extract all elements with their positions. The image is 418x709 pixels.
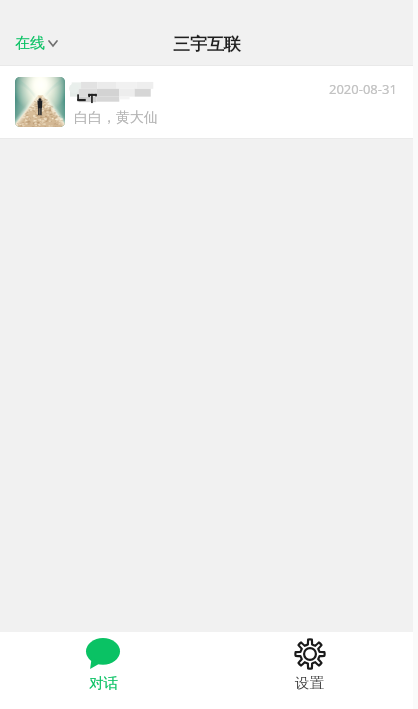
staticText: 设置 [295, 674, 324, 692]
staticText: 2020-08-31 [329, 80, 397, 98]
staticText: 对话 [89, 674, 118, 692]
staticText: 白白，黄大仙 [74, 109, 158, 127]
button[interactable]: Contact avatar [0, 66, 413, 138]
staticText: 三宇互联 [173, 34, 241, 55]
staticText: 在线 [15, 34, 45, 53]
button[interactable]: 设置 [206, 632, 413, 709]
other: Contact avatar [15, 77, 65, 127]
button[interactable]: 在线 [0, 22, 67, 65]
button[interactable]: 对话 [0, 632, 206, 709]
other: Change online status [49, 41, 57, 46]
